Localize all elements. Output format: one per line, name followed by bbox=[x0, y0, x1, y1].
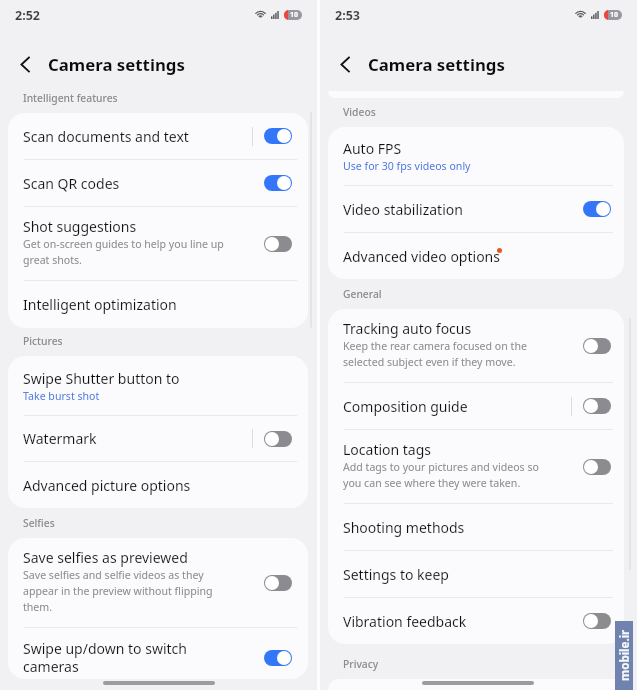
staticText: Camera settings bbox=[368, 53, 505, 76]
staticText: Watermark bbox=[23, 429, 97, 448]
staticText: Pictures bbox=[23, 334, 63, 348]
staticText: Privacy bbox=[343, 657, 379, 671]
button[interactable]: Location tags bbox=[328, 430, 624, 503]
staticText: Get on-screen guides to help you line up… bbox=[23, 237, 224, 267]
staticText: Composition guide bbox=[343, 397, 468, 416]
button[interactable]: Shot suggestions bbox=[8, 207, 308, 280]
button[interactable]: Tracking auto focus bbox=[328, 309, 624, 382]
button[interactable]: Settings to keep bbox=[328, 551, 624, 597]
button[interactable]: Video stabilization bbox=[328, 186, 624, 232]
staticText: Location tags bbox=[343, 440, 432, 459]
button[interactable]: Scan QR codes bbox=[8, 160, 308, 206]
staticText: Add tags to your pictures and videos so … bbox=[343, 460, 539, 490]
staticText: Tracking auto focus bbox=[343, 319, 472, 338]
button[interactable]: Switch off bbox=[583, 338, 611, 354]
staticText: Take burst shot bbox=[23, 389, 100, 403]
staticText: Save selfies as previewed bbox=[23, 548, 188, 567]
button[interactable]: Navigate up bbox=[332, 51, 359, 78]
staticText: Swipe up/down to switch cameras bbox=[23, 639, 187, 676]
staticText: Advanced picture options bbox=[23, 476, 191, 495]
button[interactable]: Auto FPS bbox=[328, 127, 624, 185]
staticText: Auto FPS bbox=[343, 139, 402, 158]
button[interactable]: Switch off bbox=[583, 613, 611, 629]
button[interactable]: Navigate up bbox=[12, 51, 39, 78]
staticText: Save selfies and selfie videos as they a… bbox=[23, 568, 213, 614]
button[interactable]: Switch off bbox=[264, 431, 292, 447]
staticText: General bbox=[343, 287, 382, 301]
button[interactable]: Switch off bbox=[583, 459, 611, 475]
staticText: Intelligent features bbox=[23, 91, 118, 105]
staticText: Intelligent optimization bbox=[23, 295, 177, 314]
button[interactable]: Switch on bbox=[264, 650, 292, 666]
staticText: Scan QR codes bbox=[23, 174, 120, 193]
staticText: Camera settings bbox=[48, 53, 185, 76]
staticText: Swipe Shutter button to bbox=[23, 369, 180, 388]
staticText: Use for 30 fps videos only bbox=[343, 159, 471, 173]
button[interactable]: Vibration feedback bbox=[328, 598, 624, 644]
staticText: Keep the rear camera focused on the sele… bbox=[343, 339, 527, 369]
staticText: Shot suggestions bbox=[23, 217, 137, 236]
staticText: Settings to keep bbox=[343, 565, 449, 584]
button[interactable]: Switch off bbox=[583, 398, 611, 414]
button[interactable]: Switch off bbox=[264, 236, 292, 252]
button[interactable]: Scan documents and text bbox=[8, 113, 308, 159]
button[interactable]: Switch on bbox=[264, 175, 292, 191]
staticText: 2:52 bbox=[15, 7, 40, 24]
staticText: mobile.ir bbox=[617, 629, 633, 681]
staticText: 10 bbox=[290, 10, 299, 20]
button[interactable]: Switch off bbox=[264, 575, 292, 591]
staticText: Vibration feedback bbox=[343, 612, 467, 631]
button[interactable]: Intelligent optimization bbox=[8, 281, 308, 328]
button[interactable]: Switch on bbox=[264, 128, 292, 144]
button[interactable]: Watermark bbox=[8, 416, 308, 461]
button[interactable]: Swipe up/down to switch cameras bbox=[8, 628, 308, 679]
staticText: 10 bbox=[610, 10, 619, 20]
button[interactable]: Save selfies as previewed bbox=[8, 538, 308, 627]
staticText: Scan documents and text bbox=[23, 127, 189, 146]
staticText: Shooting methods bbox=[343, 518, 465, 537]
staticText: 2:53 bbox=[335, 7, 360, 24]
button[interactable]: Shooting methods bbox=[328, 504, 624, 550]
button[interactable]: Advanced picture options bbox=[8, 462, 308, 508]
button[interactable]: Switch on bbox=[583, 201, 611, 217]
staticText: Videos bbox=[343, 105, 376, 119]
button[interactable]: Composition guide bbox=[328, 383, 624, 429]
staticText: Selfies bbox=[23, 516, 55, 530]
button[interactable]: Swipe Shutter button to bbox=[8, 356, 308, 415]
staticText: Advanced video options bbox=[343, 247, 500, 266]
button[interactable]: Advanced video options bbox=[328, 233, 624, 279]
staticText: Video stabilization bbox=[343, 200, 463, 219]
